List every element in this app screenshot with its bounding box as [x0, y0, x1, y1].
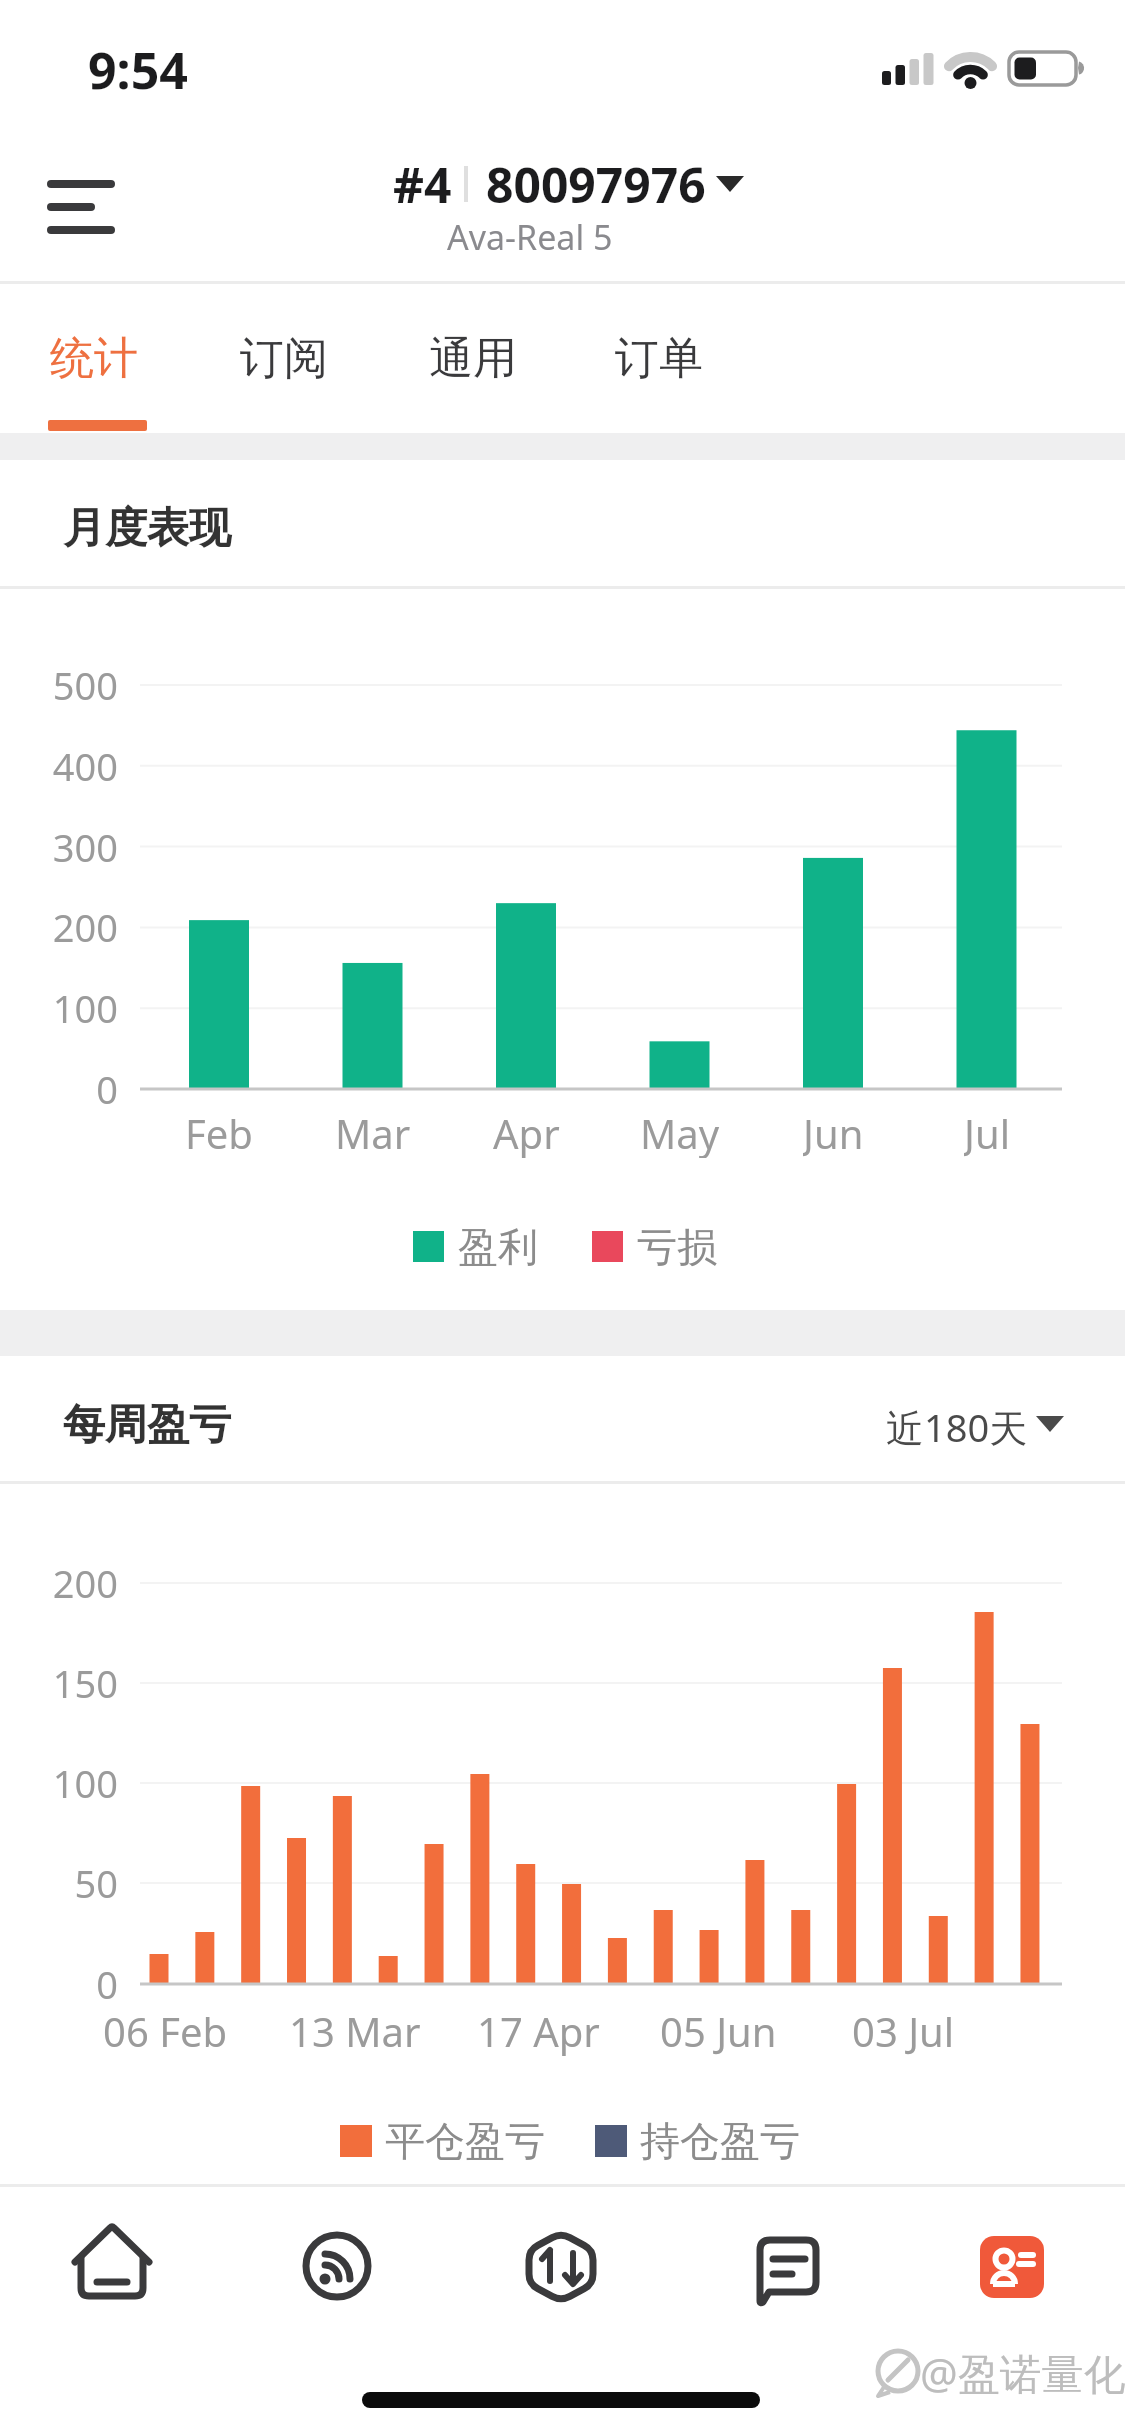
- staticText: Apr: [493, 1106, 560, 1158]
- staticText: 近180天: [886, 1401, 1028, 1453]
- staticText: 06 Feb: [103, 2004, 228, 2056]
- staticText: 统计: [50, 331, 138, 386]
- staticText: Mar: [335, 1106, 411, 1158]
- staticText: 0: [96, 1958, 118, 2010]
- staticText: 亏损: [637, 1222, 717, 1272]
- staticText: 100: [52, 1757, 118, 1809]
- staticText: 03 Jul: [852, 2004, 955, 2056]
- button[interactable]: [486, 2200, 636, 2336]
- button[interactable]: 近180天: [886, 1400, 1086, 1454]
- staticText: Jul: [964, 1106, 1010, 1158]
- button[interactable]: 订阅: [218, 284, 350, 432]
- button[interactable]: [37, 2200, 187, 2336]
- staticText: Feb: [185, 1106, 253, 1158]
- staticText: 150: [52, 1657, 118, 1709]
- button[interactable]: [262, 2200, 412, 2336]
- staticText: 17 Apr: [477, 2004, 600, 2056]
- staticText: 0: [96, 1063, 118, 1115]
- staticText: 400: [52, 740, 118, 792]
- staticText: May: [640, 1106, 720, 1158]
- staticText: 200: [52, 1557, 118, 1609]
- button[interactable]: 通用: [407, 284, 539, 432]
- staticText: 80097976: [486, 152, 706, 214]
- staticText: 订阅: [240, 331, 328, 386]
- staticText: 平仓盈亏: [385, 2116, 545, 2166]
- staticText: 盈利: [458, 1222, 538, 1272]
- staticText: 13 Mar: [289, 2004, 421, 2056]
- staticText: 月度表现: [63, 502, 231, 555]
- button[interactable]: 订单: [593, 284, 725, 432]
- button[interactable]: [711, 2200, 861, 2336]
- staticText: 500: [52, 659, 118, 711]
- staticText: @盈诺量化: [920, 2344, 1125, 2400]
- button[interactable]: [360, 148, 760, 218]
- staticText: 订单: [615, 331, 703, 386]
- staticText: 9:54: [88, 36, 188, 98]
- button[interactable]: 统计: [28, 284, 160, 432]
- staticText: #4: [393, 152, 452, 214]
- button[interactable]: [935, 2200, 1085, 2336]
- staticText: Ava-Real 5: [447, 214, 613, 258]
- staticText: 通用: [429, 331, 517, 386]
- staticText: 300: [52, 821, 118, 873]
- staticText: 05 Jun: [660, 2004, 777, 2056]
- staticText: 每周盈亏: [63, 1399, 231, 1452]
- staticText: 200: [52, 901, 118, 953]
- staticText: 100: [52, 982, 118, 1034]
- button[interactable]: [36, 160, 136, 260]
- staticText: 持仓盈亏: [640, 2116, 800, 2166]
- staticText: 50: [74, 1857, 118, 1909]
- staticText: Jun: [803, 1106, 864, 1158]
